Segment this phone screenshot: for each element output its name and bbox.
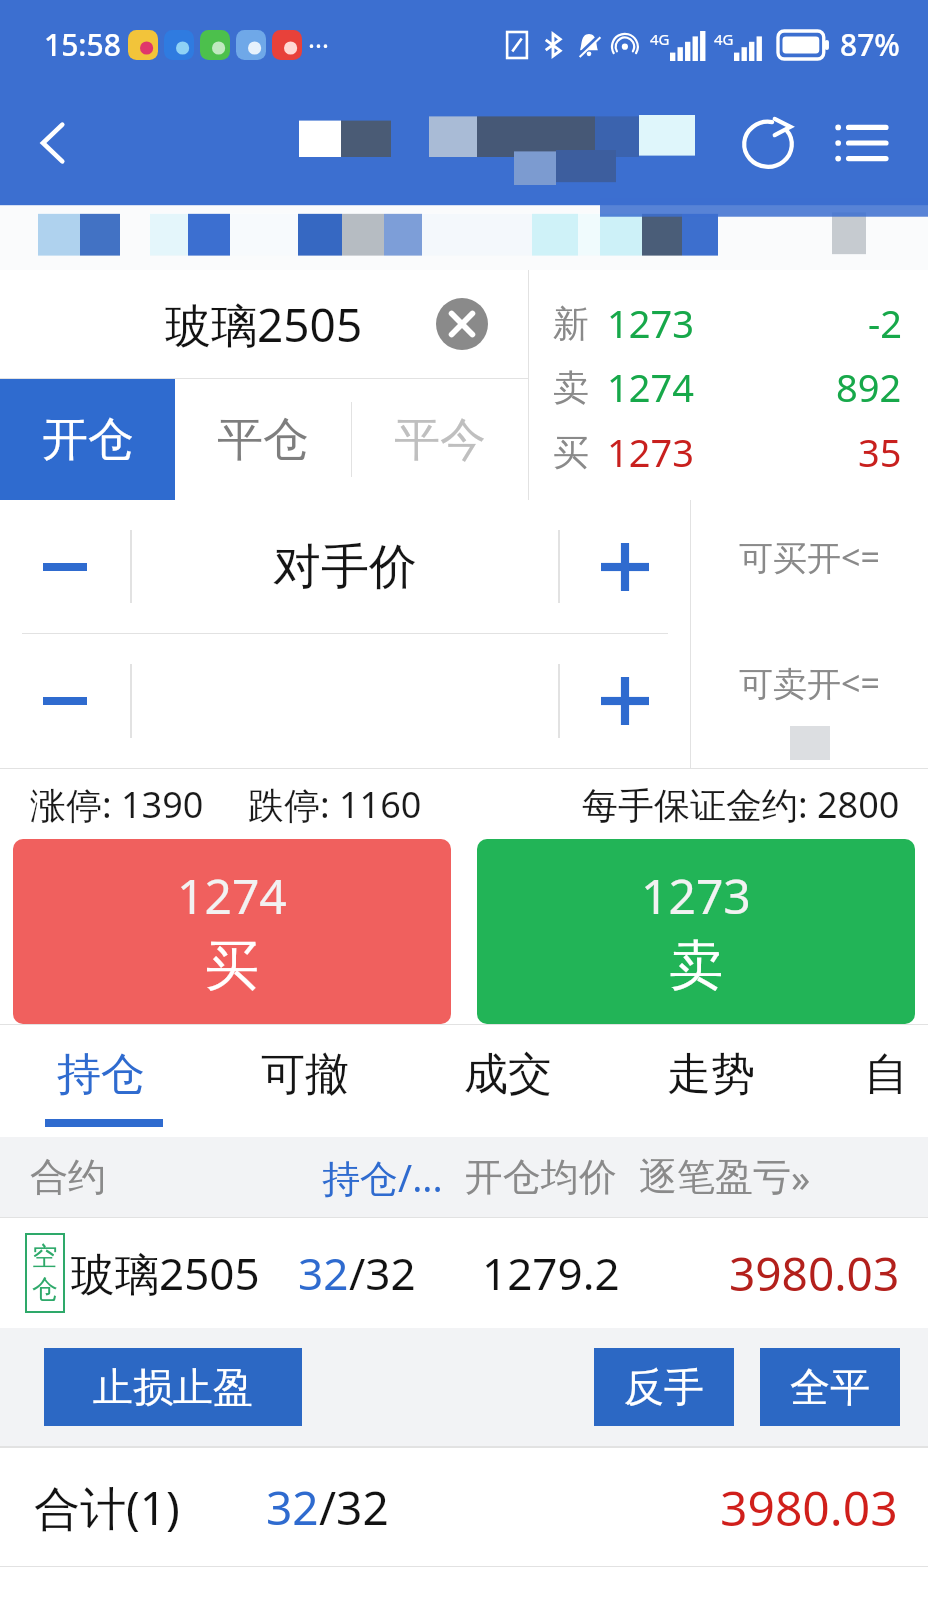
staticText: 玻璃2505 bbox=[165, 293, 363, 356]
staticText: » bbox=[791, 1151, 811, 1203]
button[interactable]: 持仓 bbox=[31, 1025, 171, 1137]
staticText: 4G bbox=[650, 29, 670, 49]
staticText: ··· bbox=[308, 27, 329, 62]
staticText: 止损止盈 bbox=[93, 1362, 253, 1412]
staticText: 买 bbox=[205, 932, 259, 1000]
staticText: 玻璃2505 bbox=[71, 1243, 260, 1303]
button[interactable]: Back bbox=[10, 99, 98, 187]
button[interactable]: Decrease bbox=[0, 500, 130, 633]
staticText: 卖 bbox=[669, 932, 723, 1000]
staticText: 1273 bbox=[641, 863, 751, 928]
button[interactable]: Refresh bbox=[722, 97, 814, 189]
staticText: 合约 bbox=[30, 1153, 106, 1201]
staticText: 1273 bbox=[607, 426, 694, 478]
staticText: 平仓 bbox=[217, 411, 309, 469]
staticText: 每手保证金约: 2800 bbox=[582, 780, 900, 829]
button[interactable]: Increase bbox=[560, 500, 690, 633]
staticText: 仓 bbox=[32, 1273, 58, 1306]
staticText: 1274 bbox=[607, 361, 694, 413]
staticText: /32 bbox=[349, 1243, 416, 1303]
button[interactable]: 可撤 bbox=[235, 1025, 375, 1137]
button[interactable]: 1273 bbox=[477, 839, 915, 1024]
button[interactable]: List bbox=[814, 97, 906, 189]
staticText: 自 bbox=[864, 1047, 908, 1102]
staticText: 全平 bbox=[790, 1362, 870, 1412]
staticText: 32 bbox=[266, 1476, 319, 1539]
button[interactable]: 玻璃2505 bbox=[0, 270, 528, 378]
staticText: 持仓/... bbox=[322, 1151, 443, 1203]
staticText: 3980.03 bbox=[729, 1242, 900, 1305]
button[interactable]: 全平 bbox=[760, 1348, 900, 1426]
button[interactable]: Decrease bbox=[0, 634, 130, 768]
staticText: 买 bbox=[553, 430, 589, 475]
staticText: 持仓 bbox=[57, 1047, 145, 1102]
staticText: 逐笔盈亏 bbox=[639, 1153, 791, 1201]
button[interactable]: 自 bbox=[816, 1025, 928, 1137]
staticText: 新 bbox=[553, 301, 589, 346]
staticText: /32 bbox=[319, 1476, 389, 1539]
button[interactable]: 成交 bbox=[438, 1025, 578, 1137]
button[interactable]: 1274 bbox=[13, 839, 451, 1024]
staticText: 涨停: 1390 bbox=[30, 780, 204, 829]
staticText: 可买开<= bbox=[739, 534, 880, 580]
staticText: -2 bbox=[868, 297, 902, 349]
button[interactable]: 开仓 bbox=[0, 379, 175, 500]
staticText: 32 bbox=[298, 1243, 349, 1303]
button[interactable]: 平仓 bbox=[175, 379, 351, 500]
staticText: 1279.2 bbox=[482, 1243, 620, 1303]
button[interactable]: 走势 bbox=[641, 1025, 781, 1137]
button[interactable]: 反手 bbox=[594, 1348, 734, 1426]
button[interactable]: 空 bbox=[0, 1218, 928, 1328]
staticText: 合计(1) bbox=[34, 1476, 180, 1539]
staticText: 开仓 bbox=[42, 411, 134, 469]
staticText: 空 bbox=[32, 1240, 58, 1273]
staticText: 可撤 bbox=[261, 1047, 349, 1102]
staticText: 开仓均价 bbox=[465, 1153, 617, 1201]
staticText: 4G bbox=[714, 29, 734, 49]
staticText: 跌停: 1160 bbox=[248, 780, 422, 829]
button[interactable]: 对手价 bbox=[132, 500, 558, 633]
staticText: 35 bbox=[858, 426, 902, 478]
button[interactable]: 止损止盈 bbox=[44, 1348, 302, 1426]
staticText: 可卖开<= bbox=[739, 660, 880, 706]
button[interactable]: 平今 bbox=[352, 379, 528, 500]
staticText: 反手 bbox=[624, 1362, 704, 1412]
staticText: 成交 bbox=[464, 1047, 552, 1102]
staticText: 15:58 bbox=[44, 24, 121, 65]
staticText: 3980.03 bbox=[720, 1475, 898, 1540]
staticText: 1274 bbox=[177, 863, 287, 928]
staticText: 892 bbox=[836, 361, 902, 413]
staticText: 走势 bbox=[667, 1047, 755, 1102]
staticText: 1273 bbox=[607, 297, 694, 349]
staticText: 卖 bbox=[553, 365, 589, 410]
staticText: 对手价 bbox=[273, 537, 417, 597]
button[interactable]: Increase bbox=[560, 634, 690, 768]
button[interactable]: Clear bbox=[434, 296, 490, 352]
staticText: 87% bbox=[840, 24, 900, 65]
staticText: 平今 bbox=[394, 411, 486, 469]
